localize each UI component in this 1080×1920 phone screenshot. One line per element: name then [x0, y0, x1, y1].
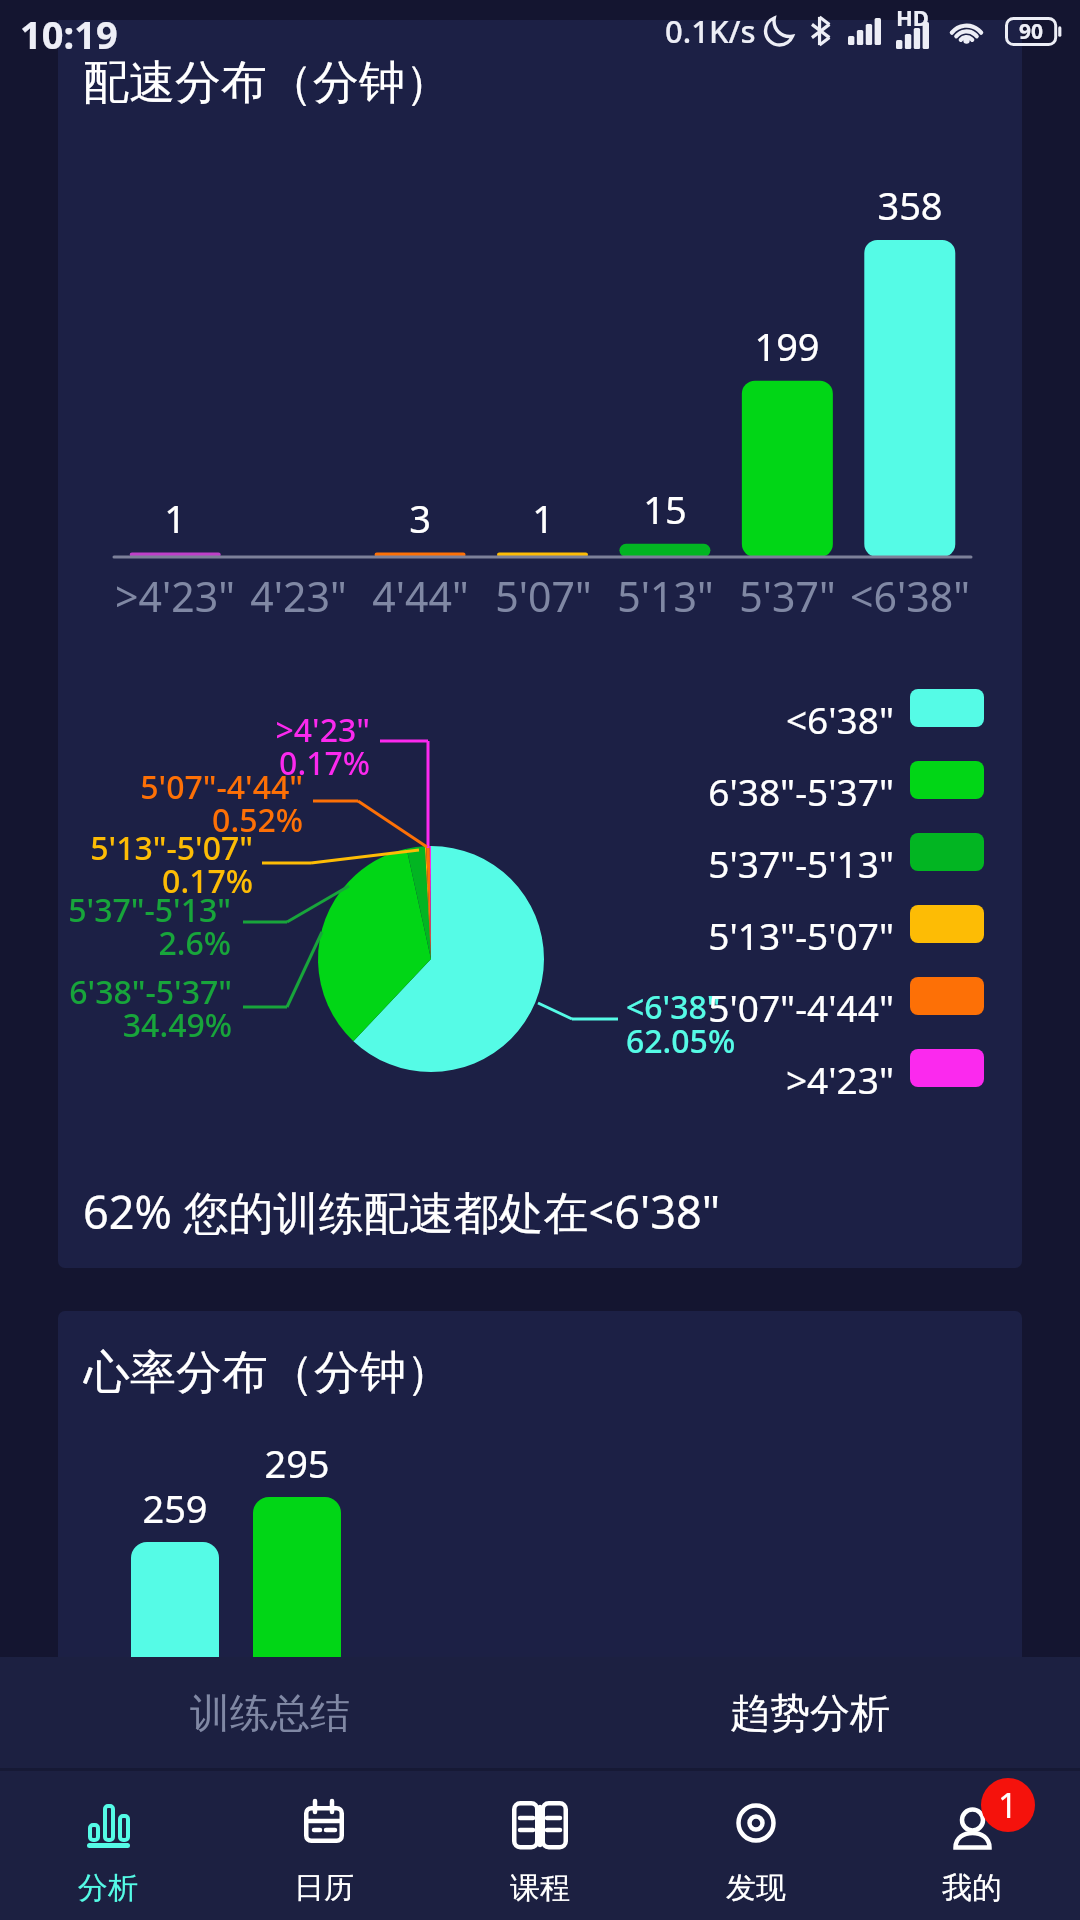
button[interactable]: 我的 [864, 1771, 1080, 1920]
staticText: 90 [1019, 17, 1044, 46]
staticText: 358 [877, 179, 943, 231]
staticText: 62% 您的训练配速都处在<6'38" [83, 1181, 721, 1242]
staticText: 4'23" [250, 568, 347, 624]
staticText: 0.17% [162, 859, 253, 903]
staticText: 0.52% [212, 798, 303, 842]
staticText: 1 [164, 492, 186, 544]
staticText: 日历 [294, 1869, 354, 1907]
staticText: 0.1K/s [665, 10, 756, 52]
staticText: 5'13"-5'07" [708, 910, 894, 960]
staticText: 发现 [726, 1869, 786, 1907]
staticText: <6'38" [850, 568, 970, 624]
other: 课程 [512, 1801, 568, 1848]
staticText: <6'38" [785, 694, 894, 744]
staticText: >4'23" [785, 1054, 894, 1104]
other: 日历 [304, 1801, 344, 1843]
other: 分析 [87, 1801, 130, 1847]
staticText: 295 [264, 1437, 330, 1489]
button[interactable]: 趋势分析 [540, 1657, 1080, 1768]
staticText: HD [896, 2, 929, 32]
staticText: 5'13"-5'07" [90, 826, 253, 870]
staticText: 分析 [78, 1869, 138, 1907]
staticText: 5'07" [495, 568, 592, 624]
staticText: 5'07"-4'44" [140, 765, 303, 809]
staticText: 1 [532, 492, 554, 544]
other: 发现 [734, 1801, 778, 1845]
staticText: 0.17% [279, 741, 370, 785]
staticText: 3 [409, 492, 431, 544]
button[interactable]: 发现 [648, 1771, 864, 1920]
staticText: 34.49% [122, 1003, 232, 1047]
staticText: 5'37"-5'13" [68, 888, 231, 932]
staticText: 训练总结 [190, 1688, 350, 1738]
staticText: 课程 [510, 1869, 570, 1907]
button[interactable]: 课程 [432, 1771, 648, 1920]
button[interactable]: 日历 [216, 1771, 432, 1920]
button[interactable]: 分析 [0, 1771, 216, 1920]
other: 我的 [954, 1806, 990, 1850]
staticText: >4'23" [115, 568, 235, 624]
button[interactable]: 训练总结 [0, 1657, 540, 1768]
staticText: 1 [998, 1782, 1018, 1828]
staticText: 5'37"-5'13" [708, 838, 894, 888]
staticText: 心率分布（分钟） [84, 1344, 452, 1402]
staticText: 199 [754, 320, 820, 372]
staticText: 6'38"-5'37" [69, 970, 232, 1014]
staticText: 5'13" [617, 568, 714, 624]
staticText: 10:19 [20, 8, 118, 52]
staticText: <6'38" [626, 985, 721, 1029]
staticText: 15 [643, 483, 687, 535]
staticText: 我的 [942, 1869, 1002, 1907]
staticText: 62.05% [626, 1019, 736, 1063]
staticText: 6'38"-5'37" [708, 766, 894, 816]
staticText: >4'23" [275, 708, 370, 752]
staticText: 5'37" [739, 568, 836, 624]
staticText: 259 [142, 1482, 208, 1534]
staticText: 4'44" [372, 568, 469, 624]
staticText: 趋势分析 [730, 1688, 890, 1738]
staticText: 2.6% [158, 921, 231, 965]
staticText: 5'07"-4'44" [708, 982, 894, 1032]
staticText: 配速分布（分钟） [83, 54, 451, 112]
